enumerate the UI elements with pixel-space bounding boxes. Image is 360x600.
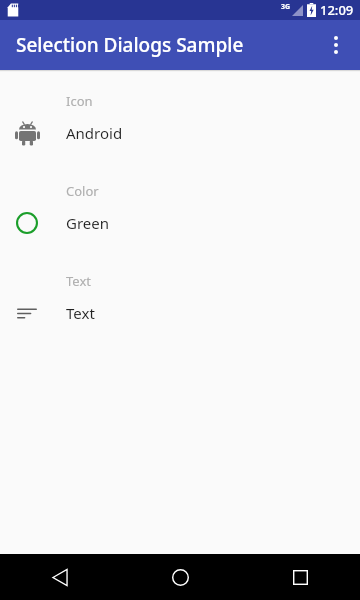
staticText: 3G: [281, 2, 291, 12]
staticText: Text: [66, 303, 95, 323]
button[interactable]: Back: [0, 554, 120, 600]
button[interactable]: Android: [0, 110, 360, 156]
staticText: 12:09: [320, 1, 354, 19]
button[interactable]: More options: [312, 21, 360, 69]
staticText: Color: [66, 182, 99, 200]
staticText: Green: [66, 213, 110, 233]
staticText: Android: [66, 123, 123, 143]
staticText: Text: [66, 272, 91, 290]
button[interactable]: Text: [0, 290, 360, 336]
button[interactable]: Green: [0, 200, 360, 246]
staticText: Icon: [66, 92, 93, 110]
button[interactable]: Recent apps: [240, 554, 360, 600]
staticText: Selection Dialogs Sample: [16, 32, 244, 58]
button[interactable]: Home: [120, 554, 240, 600]
